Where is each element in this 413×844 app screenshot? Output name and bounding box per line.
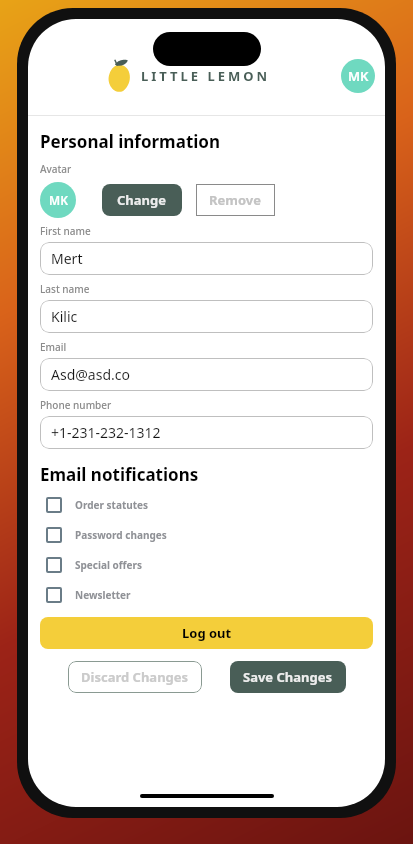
- button[interactable]: Order statutes: [40, 490, 373, 520]
- staticText: Avatar: [40, 162, 72, 176]
- button[interactable]: +1-231-232-1312: [40, 416, 373, 449]
- button[interactable]: Discard Changes: [68, 661, 202, 693]
- staticText: Last name: [40, 282, 90, 296]
- button[interactable]: Change: [102, 184, 182, 216]
- staticText: MK: [348, 67, 369, 85]
- button[interactable]: Remove: [196, 184, 275, 216]
- staticText: Log out: [182, 624, 232, 642]
- button[interactable]: Save Changes: [230, 661, 346, 693]
- button[interactable]: Profile avatar MK: [341, 59, 375, 93]
- button[interactable]: Asd@asd.co: [40, 358, 373, 391]
- staticText: Email: [40, 340, 67, 354]
- staticText: Phone number: [40, 398, 112, 412]
- button[interactable]: Mert: [40, 242, 373, 275]
- staticText: Password changes: [75, 528, 167, 542]
- staticText: +1-231-232-1312: [51, 423, 161, 442]
- staticText: Remove: [209, 191, 262, 209]
- staticText: Kilic: [51, 307, 78, 326]
- staticText: Special offers: [75, 558, 142, 572]
- staticText: Asd@asd.co: [51, 365, 130, 384]
- staticText: Email notifications: [40, 463, 199, 486]
- staticText: Mert: [51, 249, 83, 268]
- staticText: Save Changes: [243, 668, 333, 686]
- staticText: Discard Changes: [81, 668, 189, 686]
- button[interactable]: Kilic: [40, 300, 373, 333]
- staticText: MK: [49, 192, 68, 208]
- button[interactable]: Special offers: [40, 550, 373, 580]
- button[interactable]: Password changes: [40, 520, 373, 550]
- button[interactable]: Newsletter: [40, 580, 373, 610]
- staticText: Order statutes: [75, 498, 149, 512]
- button[interactable]: Log out: [40, 617, 373, 649]
- staticText: Newsletter: [75, 588, 131, 602]
- staticText: LITTLE LEMON: [141, 67, 271, 85]
- staticText: Personal information: [40, 130, 221, 153]
- staticText: First name: [40, 224, 91, 238]
- staticText: Change: [117, 191, 167, 209]
